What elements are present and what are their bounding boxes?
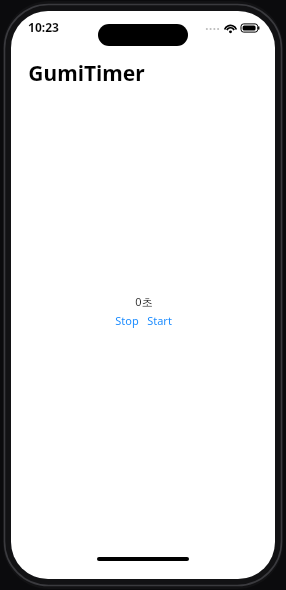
- other: Wi-Fi: [224, 23, 237, 33]
- other: Battery: [241, 23, 260, 33]
- staticText: 10:23: [28, 19, 59, 35]
- staticText: Stop: [115, 313, 139, 328]
- button[interactable]: Start: [145, 312, 174, 329]
- button[interactable]: Stop: [113, 312, 141, 329]
- staticText: Start: [147, 313, 172, 328]
- staticText: GumiTimer: [28, 59, 145, 88]
- staticText: 0초: [135, 294, 153, 309]
- other: Cellular signal: [205, 24, 220, 32]
